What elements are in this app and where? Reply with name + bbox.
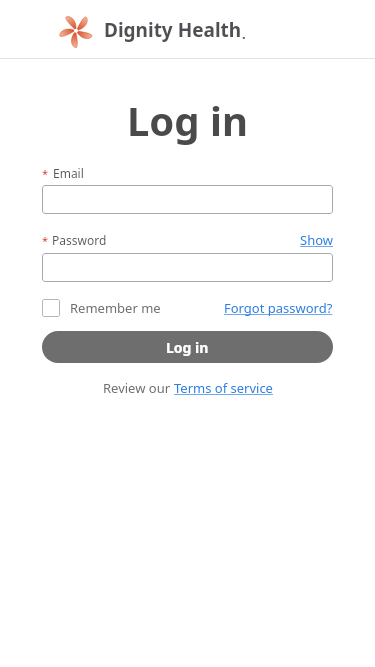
button[interactable]: Terms of service [174,379,273,397]
staticText: Forgot password? [224,299,333,317]
staticText: Log in [166,338,209,357]
button[interactable]: Show [300,231,333,249]
staticText: Terms of service [174,379,273,397]
button[interactable]: Remember me [42,299,161,317]
button[interactable] [42,185,333,214]
staticText: Password [52,232,107,248]
staticText: Show [300,231,333,249]
staticText: . [242,25,246,43]
staticText: * [42,233,49,248]
button[interactable]: Log in [42,331,333,363]
staticText: * [42,166,49,181]
staticText: Review our [103,379,174,397]
staticText: Log in [127,93,248,147]
button[interactable] [42,253,333,282]
staticText: Email [53,165,84,181]
staticText: Remember me [70,299,161,317]
staticText: Dignity Health [104,17,242,43]
button[interactable]: Forgot password? [224,299,333,317]
